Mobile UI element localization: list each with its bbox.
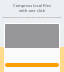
staticText: Compress local files with one click [0,3,64,13]
button[interactable] [5,63,59,67]
staticText: Reduce photo and video size without losi… [0,15,64,18]
